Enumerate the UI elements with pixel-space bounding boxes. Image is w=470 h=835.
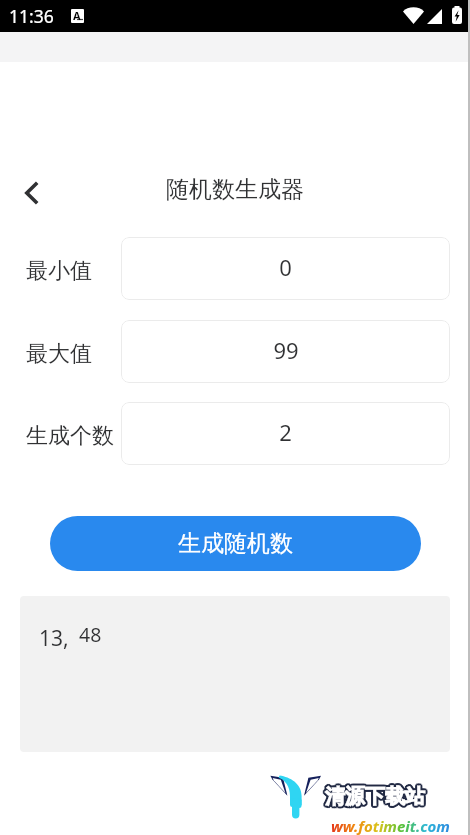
staticText: 清源下载站: [327, 784, 427, 809]
staticText: 清源下载站: [323, 783, 423, 808]
staticText: 清源下载站: [327, 785, 427, 810]
staticText: 清源下载站: [325, 786, 425, 811]
staticText: 随机数生成器: [166, 175, 304, 204]
staticText: 清源下载站: [325, 783, 425, 808]
staticText: 清源下载站: [326, 786, 426, 811]
staticText: 清源下载站: [325, 785, 425, 810]
staticText: 清源下载站: [324, 786, 424, 811]
staticText: 清源下载站: [323, 784, 423, 809]
button[interactable]: 生成随机数: [50, 516, 421, 571]
staticText: 11:36: [9, 4, 54, 28]
staticText: 清源下载站: [324, 782, 424, 807]
staticText: ww.fotimeit.com: [331, 816, 450, 835]
staticText: 清源下载站: [324, 785, 424, 810]
staticText: 清源下载站: [326, 783, 426, 808]
staticText: 清源下载站: [324, 784, 424, 809]
staticText: 清源下载站: [325, 784, 425, 809]
staticText: 清源下载站: [323, 785, 423, 810]
staticText: 清源下载站: [325, 782, 425, 807]
staticText: 2: [279, 417, 292, 447]
staticText: 清源下载站: [327, 783, 427, 808]
staticText: 生成个数: [26, 422, 114, 450]
button[interactable]: 2: [121, 402, 450, 465]
staticText: 清源下载站: [324, 783, 424, 808]
staticText: 生成随机数: [178, 529, 293, 558]
button[interactable]: Back: [12, 173, 52, 213]
staticText: 清源下载站: [326, 785, 426, 810]
staticText: 最大值: [26, 340, 92, 368]
staticText: 清源下载站: [326, 782, 426, 807]
staticText: A: [73, 9, 81, 22]
staticText: 48: [79, 621, 102, 648]
button[interactable]: 99: [121, 320, 450, 383]
staticText: 0: [279, 252, 292, 282]
staticText: 最小值: [26, 257, 92, 285]
staticText: 清源下载站: [326, 784, 426, 809]
staticText: 99: [273, 335, 299, 365]
button[interactable]: 0: [121, 237, 450, 300]
staticText: 13,: [39, 624, 69, 653]
